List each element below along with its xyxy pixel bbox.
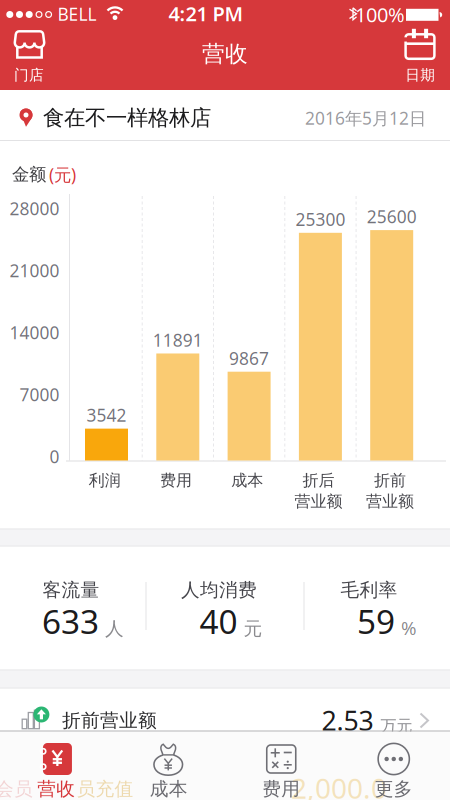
staticText: 元 xyxy=(243,617,262,640)
staticText: 25300 xyxy=(295,208,345,231)
staticText: 9867 xyxy=(229,347,269,370)
staticText: 费用 xyxy=(262,777,300,800)
staticText: 25600 xyxy=(367,205,417,228)
staticText: 会员 xyxy=(0,777,33,800)
staticText: 折前营业额 xyxy=(62,709,157,732)
staticText: 成本 xyxy=(150,777,188,800)
staticText: 2,000.0 xyxy=(291,769,387,800)
button[interactable]: 更多 xyxy=(337,731,450,800)
button[interactable]: 营收 xyxy=(0,731,112,800)
button[interactable]: 折前营业额 xyxy=(0,689,450,731)
staticText: 人 xyxy=(105,617,124,640)
staticText: 4:21 PM xyxy=(168,0,243,27)
staticText: 门店 xyxy=(14,66,44,84)
staticText: 营收 xyxy=(202,40,248,68)
staticText: 折前 xyxy=(374,470,406,490)
staticText: (元) xyxy=(49,163,76,186)
staticText: 28000 xyxy=(9,197,59,220)
staticText: 59 xyxy=(357,599,395,643)
staticText: 万元 xyxy=(380,716,412,736)
staticText: 折后 xyxy=(303,470,335,490)
staticText: 7000 xyxy=(19,383,59,406)
staticText: 营收 xyxy=(37,777,75,800)
button[interactable]: 费用 xyxy=(225,731,337,800)
staticText: 利润 xyxy=(89,470,121,490)
staticText: 0 xyxy=(49,445,59,468)
staticText: 2016年5月12日 xyxy=(305,106,426,129)
staticText: BELL xyxy=(57,2,96,25)
staticText: 成本 xyxy=(231,470,263,490)
staticText: 2.53 xyxy=(321,703,373,738)
staticText: 3542 xyxy=(86,404,126,427)
staticText: 员充值 xyxy=(76,777,133,800)
staticText: 100% xyxy=(355,1,405,28)
staticText: 费用 xyxy=(160,470,192,490)
staticText: 营业额 xyxy=(366,491,414,511)
staticText: 日期 xyxy=(405,66,435,84)
staticText: 633 xyxy=(42,599,99,643)
button[interactable]: 日期 xyxy=(386,26,450,88)
staticText: 人均消费 xyxy=(181,578,257,601)
button[interactable]: 食在不一样格林店 xyxy=(0,90,450,140)
button[interactable]: 门店 xyxy=(0,26,60,88)
staticText: 11891 xyxy=(153,328,203,351)
staticText: 客流量 xyxy=(42,578,99,601)
staticText: 21000 xyxy=(9,259,59,282)
button[interactable]: 成本 xyxy=(112,731,225,800)
staticText: % xyxy=(401,615,417,640)
staticText: 14000 xyxy=(9,321,59,344)
staticText: 毛利率 xyxy=(340,578,397,601)
staticText: 金额 xyxy=(12,164,46,185)
staticText: 更多 xyxy=(375,777,413,800)
staticText: 40 xyxy=(199,599,237,643)
staticText: 营业额 xyxy=(295,491,343,511)
staticText: 食在不一样格林店 xyxy=(43,105,211,131)
